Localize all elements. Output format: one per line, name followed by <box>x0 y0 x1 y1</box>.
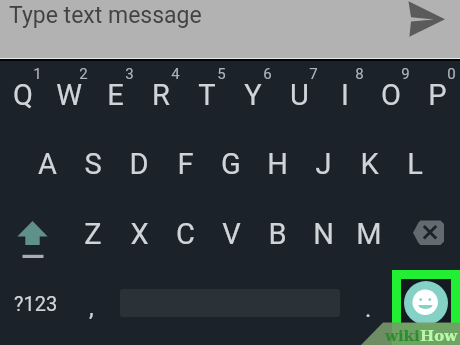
button[interactable]: Y <box>230 60 276 130</box>
staticText: 0 <box>447 65 456 83</box>
staticText: I <box>341 78 349 112</box>
staticText: X <box>130 217 149 251</box>
staticText: N <box>313 217 334 251</box>
button[interactable]: ?123 <box>8 268 64 338</box>
button[interactable]: C <box>162 199 208 269</box>
staticText: 8 <box>355 65 364 83</box>
staticText: S <box>84 147 102 181</box>
staticText: R <box>152 78 170 112</box>
staticText: W <box>56 78 82 112</box>
staticText: Y <box>244 78 262 112</box>
button[interactable]: . <box>345 274 391 344</box>
button[interactable]: O <box>368 60 414 130</box>
button[interactable]: A <box>24 129 70 199</box>
staticText: 2 <box>79 65 88 83</box>
button[interactable]: Shift <box>0 199 70 268</box>
staticText: P <box>428 78 447 112</box>
staticText: V <box>222 217 241 251</box>
button[interactable]: Send <box>404 0 450 40</box>
staticText: ?123 <box>14 292 58 315</box>
button[interactable]: X <box>116 199 162 269</box>
button[interactable]: , <box>68 273 114 343</box>
button[interactable]: G <box>208 129 254 199</box>
staticText: 9 <box>401 65 410 83</box>
staticText: D <box>129 147 149 181</box>
staticText: Z <box>84 217 102 251</box>
button[interactable]: I <box>322 60 368 130</box>
staticText: Q <box>13 78 33 112</box>
staticText: B <box>268 217 287 251</box>
button[interactable]: N <box>300 199 346 269</box>
staticText: T <box>198 78 216 112</box>
staticText: O <box>381 78 401 112</box>
button[interactable]: Emoji <box>404 281 448 325</box>
staticText: U <box>290 78 309 112</box>
button[interactable]: Backspace <box>390 199 460 268</box>
staticText: 7 <box>309 65 318 83</box>
button[interactable]: K <box>346 129 392 199</box>
staticText: F <box>177 147 194 181</box>
button[interactable]: T <box>184 60 230 130</box>
button[interactable]: B <box>254 199 300 269</box>
staticText: 5 <box>217 65 226 83</box>
button[interactable]: P <box>414 60 460 130</box>
staticText: K <box>360 147 379 181</box>
button[interactable]: H <box>254 129 300 199</box>
staticText: M <box>356 217 382 251</box>
button[interactable]: Q <box>0 60 46 130</box>
button[interactable]: E <box>92 60 138 130</box>
staticText: , <box>89 294 94 322</box>
staticText: 6 <box>263 65 272 83</box>
button[interactable]: V <box>208 199 254 269</box>
button[interactable]: J <box>300 129 346 199</box>
button[interactable]: R <box>138 60 184 130</box>
button[interactable]: L <box>392 129 438 199</box>
staticText: 3 <box>125 65 134 83</box>
staticText: wiki <box>385 327 420 345</box>
staticText: E <box>107 78 124 112</box>
staticText: 1 <box>33 65 42 83</box>
button[interactable]: U <box>276 60 322 130</box>
button[interactable]: Type text message <box>4 2 219 32</box>
staticText: C <box>176 217 195 251</box>
staticText: 4 <box>171 65 180 83</box>
button[interactable]: F <box>162 129 208 199</box>
staticText: H <box>267 147 288 181</box>
staticText: A <box>38 147 57 181</box>
button[interactable]: W <box>46 60 92 130</box>
button[interactable]: M <box>346 199 392 269</box>
button[interactable]: D <box>116 129 162 199</box>
staticText: How <box>420 327 458 345</box>
staticText: G <box>221 147 241 181</box>
staticText: Type text message <box>9 2 202 29</box>
staticText: L <box>407 147 423 181</box>
staticText: J <box>315 147 332 181</box>
button[interactable]: S <box>70 129 116 199</box>
button[interactable]: Z <box>70 199 116 269</box>
staticText: . <box>365 295 372 323</box>
